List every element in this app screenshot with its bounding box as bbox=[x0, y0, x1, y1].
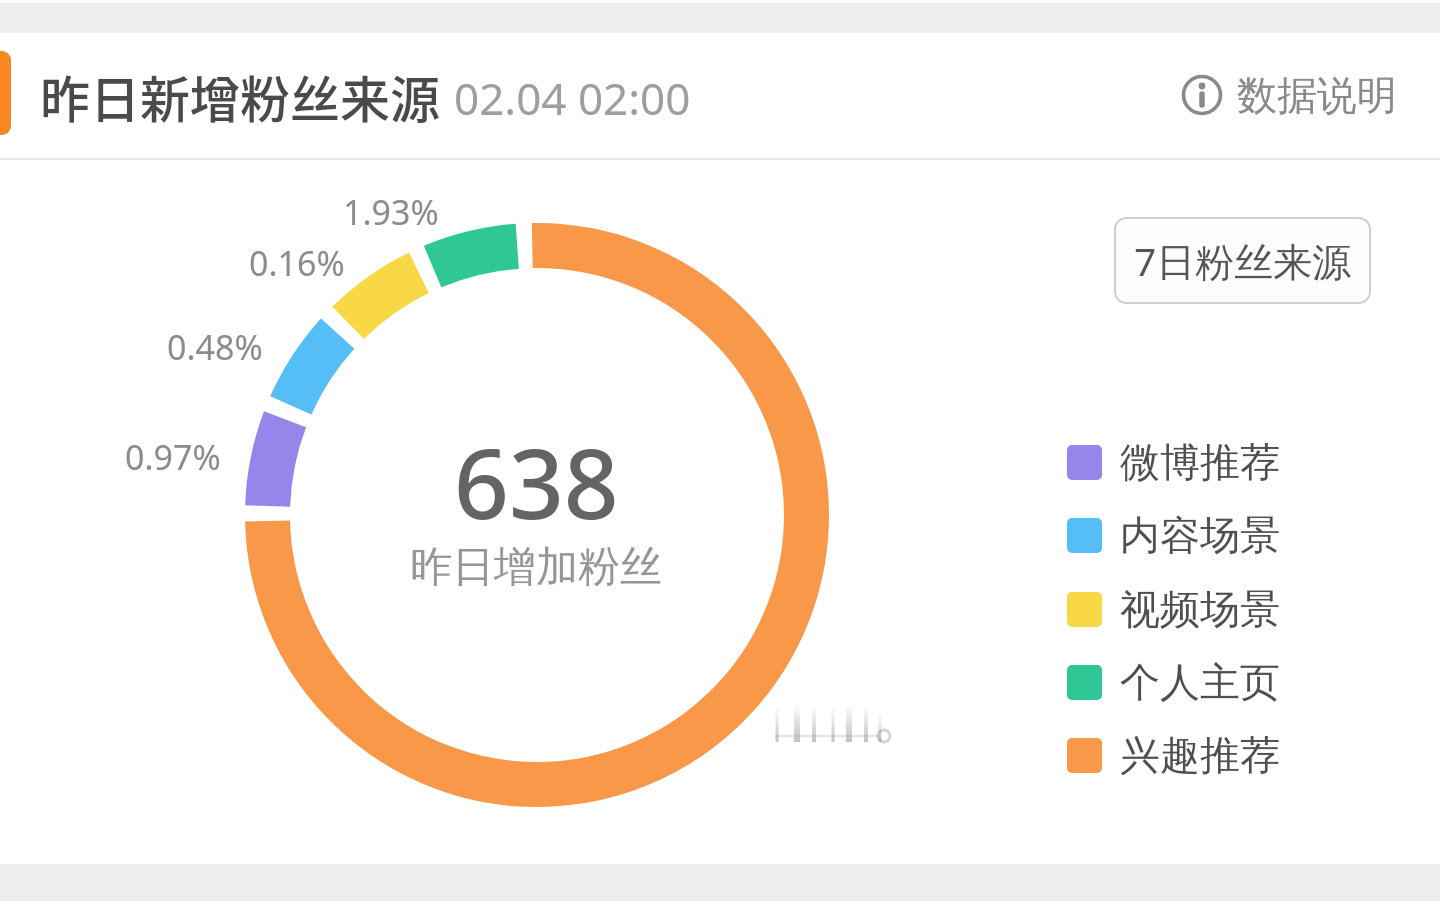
staticText: 02.04 02:00 bbox=[454, 68, 691, 128]
staticText: 7日粉丝来源 bbox=[1134, 234, 1352, 287]
staticText: 内容场景 bbox=[1120, 510, 1280, 560]
staticText: 昨日新增粉丝来源 bbox=[40, 60, 440, 132]
staticText: 兴趣推荐 bbox=[1120, 730, 1280, 780]
staticText: 0.48% bbox=[167, 324, 263, 368]
staticText: 数据说明 bbox=[1237, 70, 1397, 120]
staticText: 视频场景 bbox=[1120, 584, 1280, 634]
staticText: 个人主页 bbox=[1120, 657, 1280, 707]
staticText: 1.93% bbox=[343, 189, 439, 233]
staticText: 638 bbox=[454, 416, 619, 536]
staticText: 0.16% bbox=[249, 240, 345, 284]
button[interactable]: 数据说明 bbox=[1181, 55, 1397, 135]
staticText: 昨日增加粉丝 bbox=[410, 541, 662, 594]
button[interactable]: 7日粉丝来源 bbox=[1114, 217, 1371, 304]
staticText: 0.97% bbox=[125, 434, 221, 478]
staticText: 微博推荐 bbox=[1120, 437, 1280, 487]
